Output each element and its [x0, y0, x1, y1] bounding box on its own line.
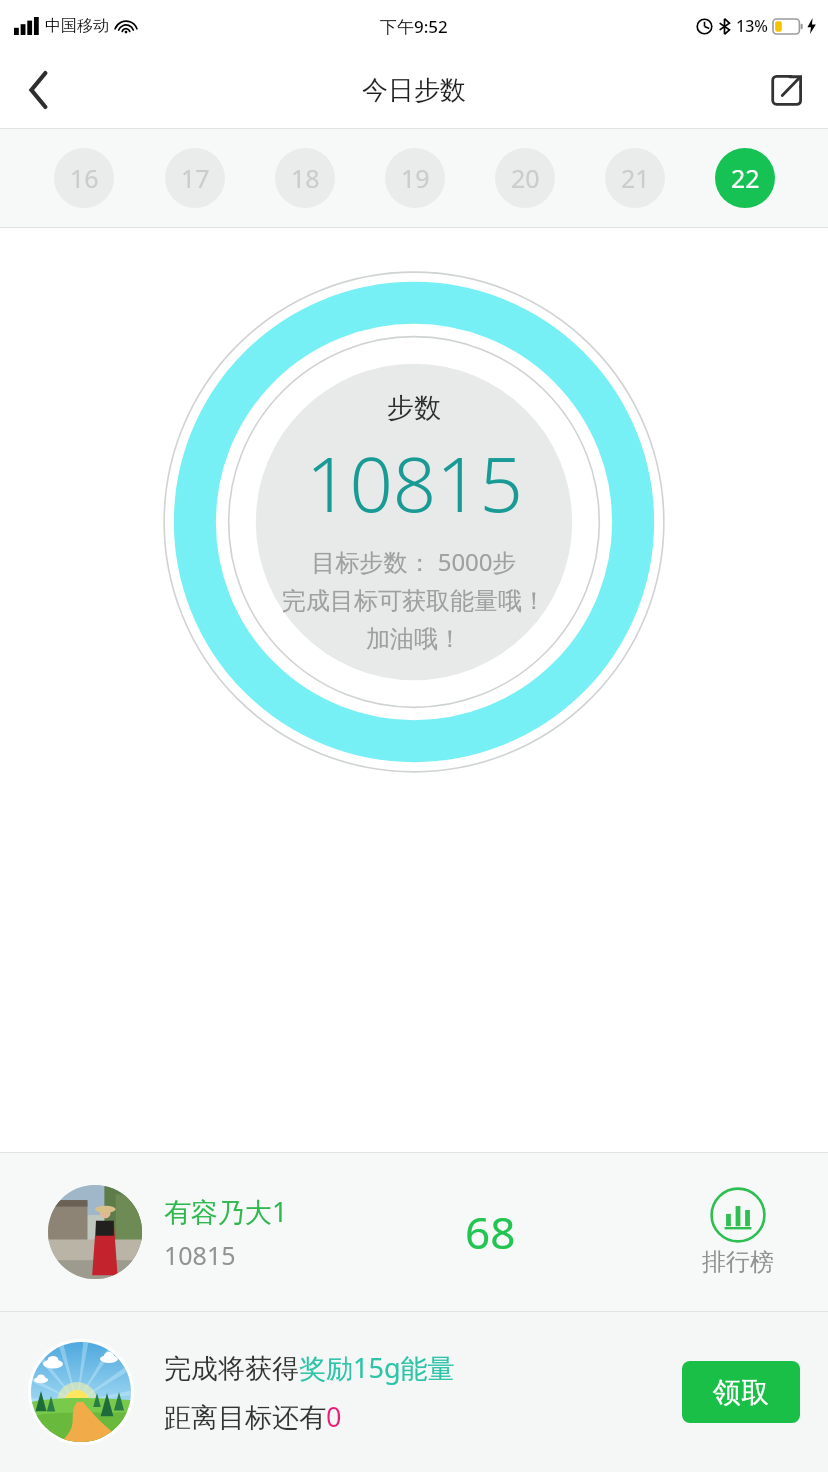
staticText: 完成将获得奖励15g能量	[164, 1349, 455, 1386]
staticText: 19	[401, 161, 430, 195]
button[interactable]: 21	[580, 129, 690, 227]
button[interactable]: Back	[10, 61, 68, 119]
staticText: 领取	[713, 1375, 769, 1410]
staticText: 中国移动	[45, 16, 109, 36]
button[interactable]: 18	[250, 129, 360, 227]
staticText: 有容乃大1	[164, 1193, 288, 1230]
staticText: 完成目标可获取能量哦！	[282, 586, 546, 616]
button[interactable]: 16	[28, 129, 139, 227]
staticText: 下午9:52	[380, 15, 448, 38]
staticText: 10815	[164, 1238, 236, 1272]
button[interactable]: 22	[690, 129, 800, 227]
staticText: 距离目标还有0	[164, 1398, 342, 1435]
staticText: 21	[621, 161, 650, 195]
staticText: 17	[181, 161, 210, 195]
button[interactable]: 排行榜	[702, 1187, 774, 1277]
staticText: 68	[465, 1202, 516, 1262]
staticText: 20	[511, 161, 540, 195]
staticText: 排行榜	[702, 1247, 774, 1277]
staticText: 18	[291, 161, 320, 195]
staticText: 22	[731, 161, 760, 195]
staticText: 10815	[306, 431, 523, 535]
button[interactable]: 20	[470, 129, 580, 227]
staticText: 步数	[387, 391, 441, 425]
staticText: 13%	[736, 15, 768, 37]
staticText: 加油哦！	[366, 624, 462, 654]
staticText: 目标步数： 5000步	[311, 545, 517, 578]
staticText: 16	[70, 161, 99, 195]
button[interactable]: 19	[360, 129, 470, 227]
button[interactable]: 领取	[682, 1361, 800, 1423]
button[interactable]: 有容乃大1	[0, 1153, 828, 1311]
button[interactable]: 17	[139, 129, 250, 227]
button[interactable]: Share	[758, 61, 816, 119]
staticText: 今日步数	[362, 74, 466, 107]
